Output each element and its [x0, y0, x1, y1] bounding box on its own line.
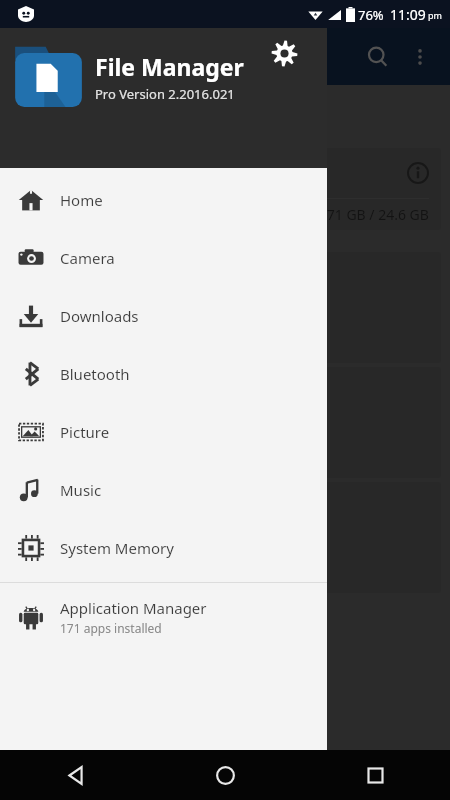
staticText: File Manager — [95, 51, 244, 82]
button[interactable]: System Memory — [0, 519, 327, 577]
button[interactable]: Downloads — [0, 287, 327, 345]
button[interactable]: Home — [0, 171, 327, 229]
staticText: Pro Version 2.2016.021 — [95, 85, 235, 103]
staticText: Internal Storage — [21, 163, 136, 183]
button[interactable]: Videos — [9, 252, 441, 363]
button[interactable]: More options — [400, 37, 440, 77]
button[interactable]: Internal Storage — [9, 148, 441, 230]
staticText: 171 apps installed — [60, 620, 162, 636]
staticText: Picture — [60, 422, 110, 442]
button[interactable]: Archives — [9, 367, 441, 478]
button[interactable]: Picture — [0, 403, 327, 461]
button[interactable]: Music — [0, 461, 327, 519]
staticText: Bluetooth — [60, 364, 130, 384]
button[interactable]: Settings — [267, 36, 301, 70]
staticText: Camera — [60, 248, 115, 268]
staticText: Application Manager — [60, 598, 207, 618]
button[interactable]: Application Manager — [0, 588, 327, 646]
button[interactable]: Search — [356, 35, 400, 79]
button[interactable]: Back — [0, 750, 150, 800]
staticText: Downloads — [60, 306, 139, 326]
staticText: 5.71 GB / 24.6 GB — [315, 205, 429, 224]
staticText: pm — [428, 9, 442, 21]
button[interactable]: Home — [150, 750, 300, 800]
staticText: 11:09 — [390, 5, 426, 24]
staticText: Music — [60, 480, 102, 500]
staticText: Home — [60, 190, 103, 210]
staticText: 76% — [358, 6, 384, 24]
staticText: System Memory — [60, 538, 174, 558]
button[interactable]: Bluetooth — [0, 345, 327, 403]
button[interactable]: Recent apps — [300, 750, 450, 800]
button[interactable]: Bluetooth — [9, 482, 441, 593]
button[interactable]: Camera — [0, 229, 327, 287]
